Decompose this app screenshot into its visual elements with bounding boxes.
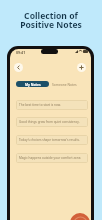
staticText: Magic happens outside your comfort zone. bbox=[19, 156, 82, 160]
staticText: Someone Notes bbox=[52, 82, 77, 86]
staticText: My Notes bbox=[25, 82, 41, 86]
staticText: Collection of Positive Notes bbox=[0, 10, 102, 31]
button[interactable]: Good things grow from quiet consistency. bbox=[16, 117, 88, 127]
button[interactable]: Someone Notes bbox=[52, 81, 77, 87]
button[interactable]: My Notes bbox=[16, 81, 49, 87]
button[interactable]: New note bbox=[70, 213, 90, 220]
staticText: Today's choices shape tomorrow's results… bbox=[19, 138, 80, 142]
button[interactable]: Back bbox=[14, 63, 23, 72]
staticText: Good things grow from quiet consistency. bbox=[19, 120, 80, 124]
button[interactable]: Add note bbox=[77, 63, 86, 72]
staticText: 09:41 bbox=[16, 50, 26, 55]
staticText: The best time to start is now. bbox=[19, 103, 61, 107]
button[interactable]: The best time to start is now. bbox=[16, 100, 88, 110]
button[interactable]: Today's choices shape tomorrow's results… bbox=[16, 135, 88, 145]
button[interactable]: Magic happens outside your comfort zone. bbox=[16, 153, 88, 163]
